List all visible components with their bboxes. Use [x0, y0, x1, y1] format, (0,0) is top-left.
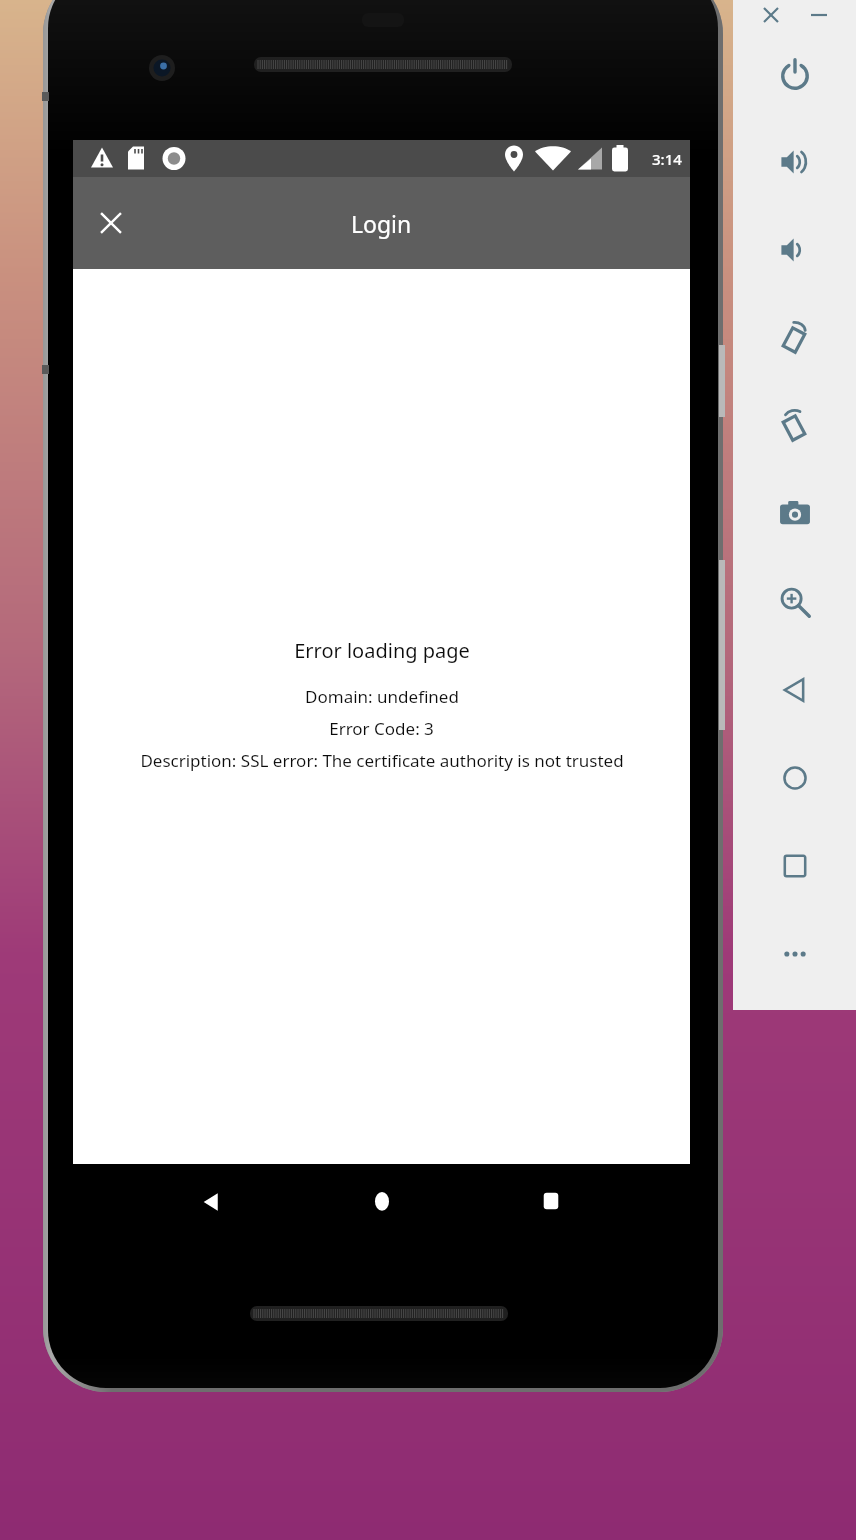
button[interactable]: More	[733, 910, 856, 998]
button[interactable]: Power	[733, 30, 856, 118]
staticText: Error Code: 3	[329, 717, 434, 740]
button[interactable]: Recent apps	[520, 1171, 582, 1233]
button[interactable]: Take screenshot	[733, 470, 856, 558]
staticText: 3:14	[652, 149, 682, 169]
button[interactable]: Overview	[733, 822, 856, 910]
button[interactable]: Rotate right	[733, 382, 856, 470]
button[interactable]: Home	[351, 1171, 413, 1233]
button[interactable]: Minimize	[802, 0, 836, 30]
button[interactable]: Volume down	[733, 206, 856, 294]
button[interactable]: Volume up	[733, 118, 856, 206]
button[interactable]: Rotate left	[733, 294, 856, 382]
staticText: Domain: undefined	[305, 685, 459, 708]
staticText: Login	[351, 208, 412, 239]
staticText: Error loading page	[294, 637, 470, 664]
button[interactable]: Back	[733, 646, 856, 734]
staticText: Description: SSL error: The certificate …	[140, 749, 624, 772]
button[interactable]: Close	[754, 0, 788, 30]
button[interactable]: Zoom	[733, 558, 856, 646]
button[interactable]: Home	[733, 734, 856, 822]
button[interactable]: Back	[181, 1171, 243, 1233]
button[interactable]: Close	[87, 199, 135, 247]
